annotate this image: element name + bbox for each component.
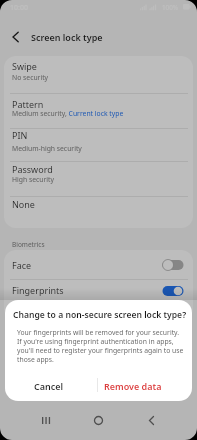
button[interactable]: [133, 410, 173, 434]
button[interactable]: [4, 56, 193, 93]
staticText: Remove data: [104, 380, 162, 392]
staticText: Face: [12, 259, 32, 271]
staticText: High security: [12, 175, 54, 184]
staticText: Screen lock type: [31, 31, 103, 43]
button[interactable]: [78, 410, 118, 434]
staticText: Biometrics: [12, 240, 45, 249]
staticText: Cancel: [34, 380, 64, 392]
button[interactable]: Remove data: [99, 373, 185, 396]
staticText: Change to a non-secure screen lock type?: [13, 309, 187, 321]
button[interactable]: [4, 26, 26, 48]
staticText: None: [12, 198, 35, 210]
staticText: Pattern: [12, 98, 44, 110]
staticText: Medium-high security: [12, 144, 82, 153]
staticText: Fingerprints: [12, 284, 64, 296]
button[interactable]: [4, 128, 193, 161]
button[interactable]: Cancel: [21, 373, 83, 396]
staticText: Medium security, Current lock type: [12, 109, 124, 118]
button[interactable]: [30, 410, 70, 434]
button[interactable]: [4, 195, 193, 228]
button[interactable]: [4, 93, 193, 128]
button[interactable]: [4, 161, 193, 195]
staticText: Your fingerprints will be removed for yo…: [17, 328, 184, 364]
button[interactable]: [4, 250, 193, 279]
button[interactable]: [162, 285, 184, 297]
staticText: PIN: [12, 129, 28, 141]
button[interactable]: [4, 279, 193, 310]
staticText: Password: [12, 163, 53, 175]
staticText: No security: [12, 73, 49, 82]
button[interactable]: [162, 259, 184, 271]
staticText: Swipe: [12, 60, 37, 72]
